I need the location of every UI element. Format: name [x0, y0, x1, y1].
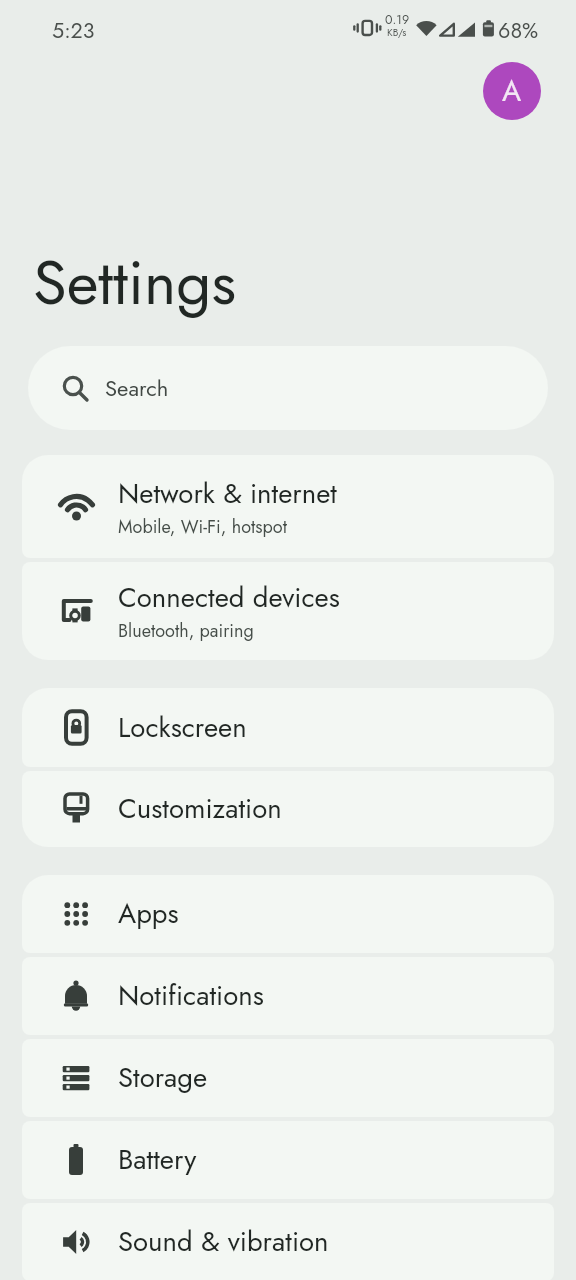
staticText: A	[502, 70, 522, 112]
staticText: Mobile, Wi-Fi, hotspot	[118, 514, 287, 540]
staticText: Customization	[118, 789, 282, 829]
staticText: Lockscreen	[118, 708, 247, 748]
staticText: KB/s	[387, 25, 407, 39]
staticText: Settings	[33, 238, 237, 327]
staticText: Network & internet	[118, 474, 337, 514]
staticText: 0.19	[385, 11, 410, 29]
staticText: 5:23	[52, 15, 95, 46]
staticText: Apps	[118, 894, 179, 934]
staticText: Connected devices	[118, 578, 340, 618]
staticText: 68%	[498, 15, 539, 46]
staticText: Search	[105, 372, 169, 404]
staticText: Battery	[118, 1140, 197, 1180]
staticText: Storage	[118, 1058, 208, 1098]
staticText: Sound & vibration	[118, 1222, 329, 1262]
staticText: Notifications	[118, 976, 264, 1016]
staticText: Bluetooth, pairing	[118, 618, 254, 644]
